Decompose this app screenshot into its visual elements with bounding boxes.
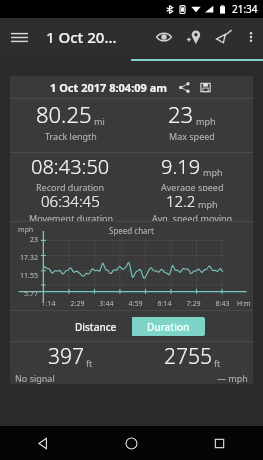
button[interactable]: 06:34:45 (10, 191, 131, 221)
button[interactable]: Distance (59, 317, 132, 336)
button[interactable]: Back (0, 426, 87, 460)
staticText: 2:29 (63, 299, 92, 309)
button[interactable]: Duration (132, 317, 205, 336)
staticText: H:m (237, 299, 251, 309)
button[interactable]: 397 (10, 342, 131, 371)
staticText: Average speed (161, 181, 224, 191)
staticText: Speed chart (109, 225, 154, 236)
staticText: 7:29 (179, 299, 208, 309)
staticText: 23 (168, 99, 194, 129)
staticText: ft (86, 357, 93, 369)
staticText: 06:34:45 (41, 191, 100, 211)
staticText: 397 (48, 342, 84, 371)
staticText: Movement duration (29, 212, 113, 221)
staticText: 5.77 (12, 289, 38, 299)
button[interactable]: 9.19 (131, 153, 253, 191)
staticText: — mph (217, 372, 248, 384)
button[interactable]: 08:43:50 (10, 153, 131, 191)
staticText: 6:14 (150, 299, 179, 309)
staticText: Max speed (169, 130, 215, 142)
button[interactable]: 80.25 (10, 99, 131, 142)
button[interactable]: Speed chart (10, 222, 253, 310)
staticText: 4:59 (121, 299, 150, 309)
staticText: Distance (75, 320, 117, 334)
staticText: 23 (12, 235, 38, 245)
staticText: 2755 (164, 342, 212, 371)
staticText: 08:43:50 (31, 153, 110, 180)
staticText: mi (94, 115, 105, 127)
staticText: mph (196, 115, 216, 127)
button[interactable]: Open navigation drawer (0, 18, 38, 56)
staticText: 80.25 (36, 99, 92, 129)
staticText: Record duration (36, 181, 105, 191)
button[interactable]: 2755 (131, 342, 253, 371)
staticText: Avg. speed moving (152, 212, 233, 221)
button[interactable]: Show on map (149, 18, 179, 56)
staticText: Track length (45, 130, 97, 142)
staticText: mph (198, 198, 218, 210)
button[interactable]: Home (87, 426, 175, 460)
button[interactable]: Recent apps (175, 426, 263, 460)
button[interactable]: Share (176, 79, 192, 95)
staticText: 12.2 (166, 191, 196, 211)
button[interactable]: Navigate (209, 18, 239, 56)
staticText: 21:34 (232, 2, 258, 16)
staticText: 1 Oct 2017 8:04:09 am (50, 80, 168, 95)
staticText: 3:44 (92, 299, 121, 309)
button[interactable]: More options (239, 18, 263, 56)
staticText: Duration (147, 320, 190, 334)
staticText: No signal (15, 372, 217, 384)
staticText: mph (18, 225, 34, 235)
button[interactable]: Add waypoint (179, 18, 209, 56)
button[interactable]: Save (197, 79, 213, 95)
staticText: ft (214, 357, 221, 369)
staticText: mph (203, 166, 223, 178)
button[interactable]: 12.2 (131, 191, 253, 221)
staticText: 11.55 (12, 271, 38, 281)
staticText: 9.19 (161, 153, 201, 180)
staticText: 8:43 (208, 299, 237, 309)
button[interactable]: 23 (131, 99, 253, 142)
staticText: 1:14 (34, 299, 63, 309)
staticText: 17.32 (12, 253, 38, 263)
button[interactable]: 1 Oct 20... (46, 27, 149, 47)
